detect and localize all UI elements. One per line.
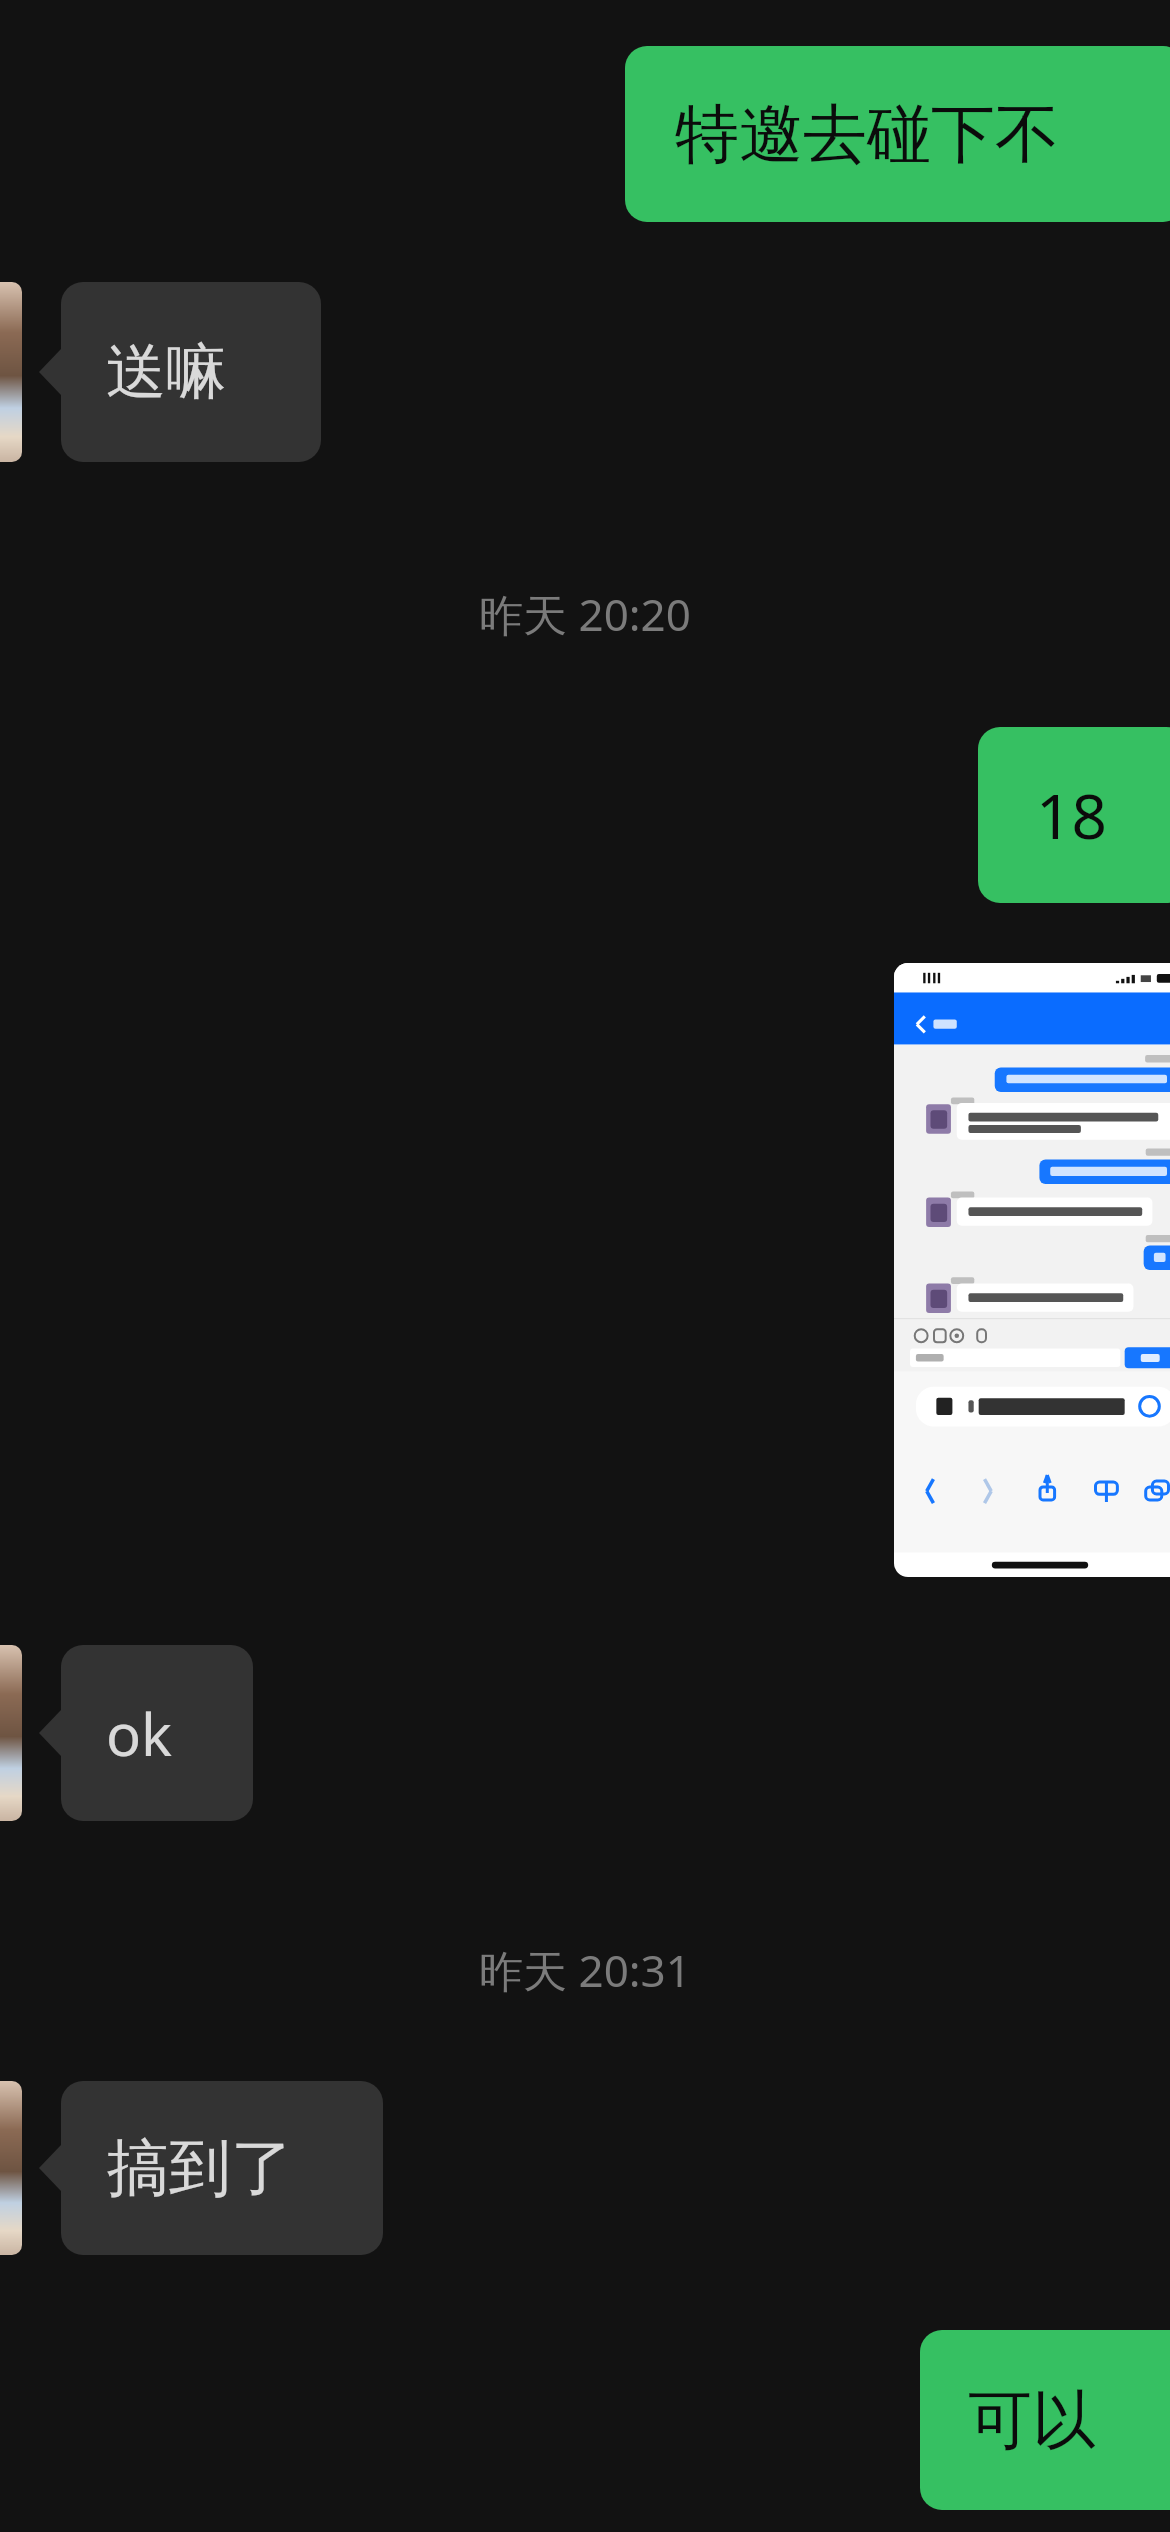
staticText: 可以 xyxy=(968,2380,1096,2461)
button[interactable]: Screenshot image xyxy=(894,963,1170,1577)
button[interactable]: 18 xyxy=(978,727,1170,903)
staticText: 昨天 20:31 xyxy=(0,1940,1170,2532)
staticText: 搞到了 xyxy=(107,2129,293,2207)
button[interactable]: 送嘛 xyxy=(61,282,321,462)
staticText: 昨天 20:20 xyxy=(0,584,1170,2532)
staticText: 送嘛 xyxy=(106,334,226,410)
button[interactable]: 特邀去碰下不 xyxy=(625,46,1170,222)
button[interactable]: 搞到了 xyxy=(61,2081,383,2255)
other: Contact avatar xyxy=(0,282,22,462)
other: Contact avatar xyxy=(0,2081,22,2255)
staticText: 特邀去碰下不 xyxy=(675,94,1059,175)
button[interactable]: 可以 xyxy=(920,2330,1170,2510)
other: Contact avatar xyxy=(0,1645,22,1821)
staticText: ok xyxy=(106,1694,173,1773)
staticText: 18 xyxy=(1036,773,1107,857)
button[interactable]: ok xyxy=(61,1645,253,1821)
